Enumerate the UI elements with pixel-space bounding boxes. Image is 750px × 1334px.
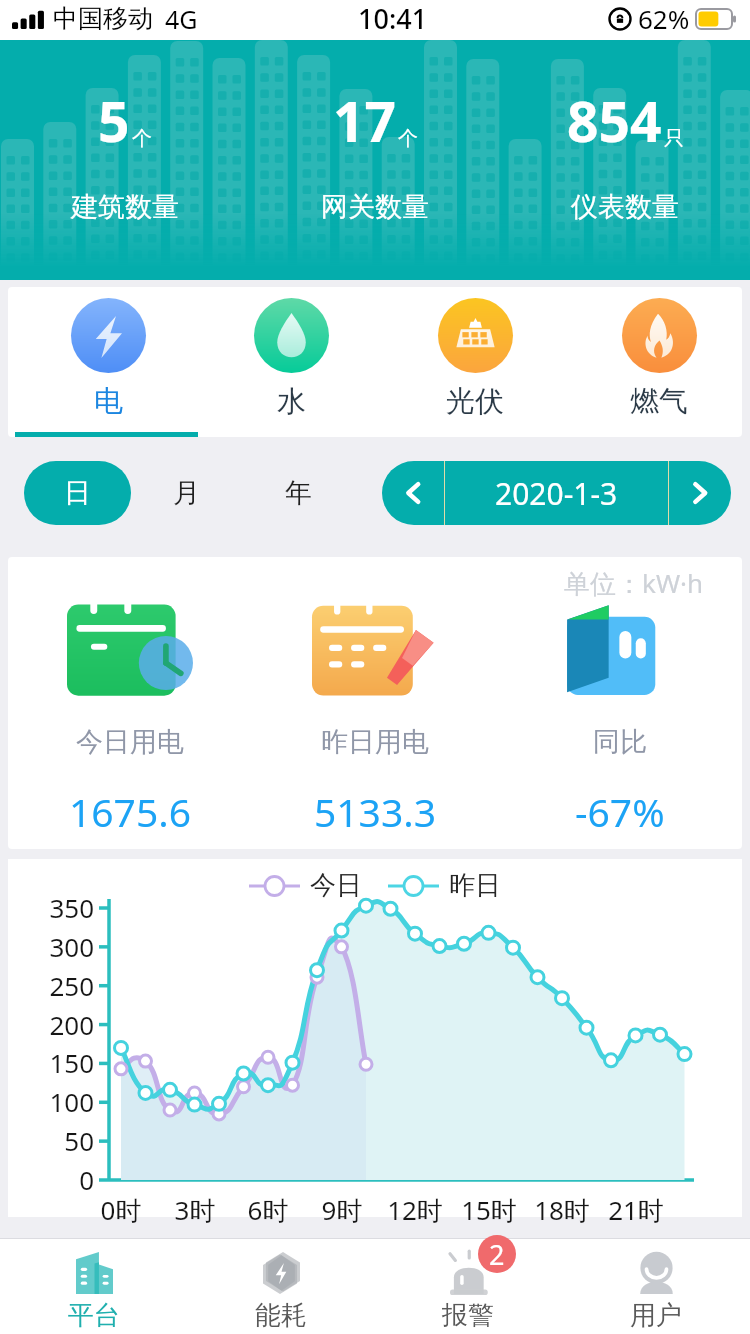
staticText: 月 [173,476,200,510]
staticText: 6时 [223,1192,313,1228]
button[interactable]: 同比 [497,557,742,849]
staticText: 854 [567,83,662,158]
staticText: 62% [638,1,690,36]
staticText: 今日 [310,869,362,902]
button[interactable]: 用户 [562,1239,750,1334]
button[interactable]: 2020-1-3 [445,461,668,525]
staticText: 21时 [591,1192,681,1228]
staticText: 15时 [444,1192,534,1228]
staticText: 0 [8,1162,94,1197]
staticText: 3时 [150,1192,240,1228]
staticText: 个 [132,126,152,151]
staticText: 100 [8,1084,94,1119]
staticText: 单位：kW·h [564,565,704,601]
staticText: 350 [8,890,94,925]
staticText: 5 [98,83,130,158]
staticText: 150 [8,1045,94,1080]
staticText: 昨日 [449,869,501,902]
staticText: 250 [8,968,94,1003]
button[interactable]: 年 [241,461,355,525]
staticText: 光伏 [446,383,504,420]
staticText: 1675.6 [69,785,191,838]
staticText: 网关数量 [321,190,429,224]
button[interactable]: 今日用电 [8,557,252,849]
button[interactable]: 月 [131,461,241,525]
staticText: 5133.3 [314,785,436,838]
staticText: 9时 [297,1192,387,1228]
button[interactable]: 光伏 [374,287,558,437]
staticText: 4G [165,2,198,36]
button[interactable]: Previous date [382,461,444,525]
staticText: 2020-1-3 [495,473,618,514]
staticText: 建筑数量 [71,190,179,224]
staticText: 能耗 [255,1299,307,1332]
button[interactable]: 昨日 [388,869,501,902]
staticText: 50 [8,1123,94,1158]
staticText: 17 [333,83,396,158]
staticText: 0时 [76,1192,166,1228]
staticText: 今日用电 [76,725,184,759]
staticText: 12时 [370,1192,460,1228]
staticText: 18时 [517,1192,607,1228]
staticText: 200 [8,1007,94,1042]
staticText: 报警 [442,1299,494,1332]
staticText: 日 [64,476,91,510]
staticText: 平台 [68,1299,120,1332]
button[interactable]: 电 [8,287,191,437]
staticText: 2 [489,1236,505,1273]
button[interactable]: 水 [191,287,374,437]
button[interactable]: 能耗 [187,1239,374,1334]
staticText: 中国移动 [53,3,153,34]
staticText: 300 [8,929,94,964]
staticText: 10:41 [358,0,428,37]
staticText: 只 [664,126,684,151]
button[interactable]: 2 [374,1239,562,1334]
staticText: 同比 [593,725,647,759]
staticText: 个 [398,126,418,151]
button[interactable]: Next date [669,461,731,525]
staticText: 年 [285,476,312,510]
staticText: 用户 [630,1299,682,1332]
button[interactable]: 昨日用电 [252,557,497,849]
staticText: 电 [94,383,123,420]
staticText: 水 [277,383,306,420]
button[interactable]: 平台 [0,1239,187,1334]
button[interactable]: 日 [24,461,131,525]
staticText: 燃气 [630,383,688,420]
staticText: 昨日用电 [321,725,429,759]
staticText: 仪表数量 [571,190,679,224]
button[interactable]: 燃气 [558,287,742,437]
staticText: -67% [575,785,665,838]
button[interactable]: 今日 [249,869,362,902]
